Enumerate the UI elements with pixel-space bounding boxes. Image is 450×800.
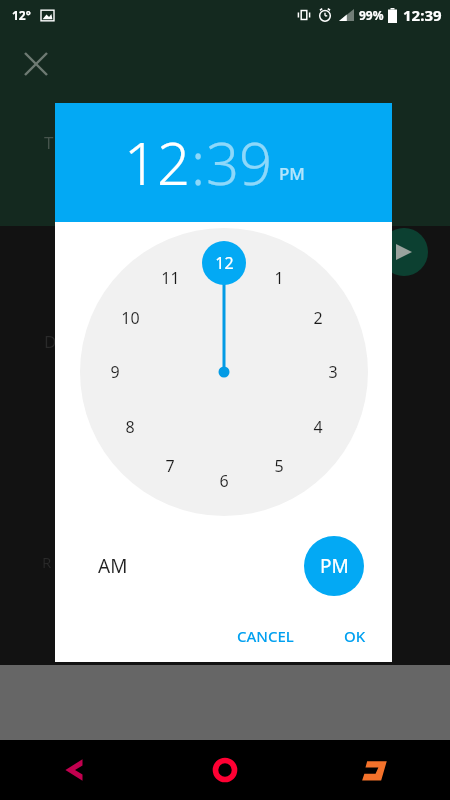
staticText: 9 xyxy=(110,361,120,383)
staticText: : xyxy=(191,123,206,202)
staticText: D xyxy=(44,330,57,353)
button[interactable]: 9 xyxy=(98,355,132,389)
staticText: 1 xyxy=(274,267,284,289)
staticText: CANCEL xyxy=(237,626,294,646)
button[interactable]: 12 xyxy=(207,246,241,280)
button[interactable]: 4 xyxy=(301,410,335,444)
button[interactable]: Recents xyxy=(300,740,450,800)
staticText: R xyxy=(42,552,52,572)
staticText: OK xyxy=(344,626,366,646)
button[interactable]: 39 xyxy=(206,123,273,202)
staticText: 6 xyxy=(219,470,229,492)
button[interactable]: 3 xyxy=(316,355,350,389)
button[interactable]: 6 xyxy=(207,464,241,498)
staticText: 10 xyxy=(121,307,140,329)
staticText: 4 xyxy=(313,416,323,438)
staticText: 8 xyxy=(125,416,135,438)
button[interactable]: Close xyxy=(16,44,56,84)
button[interactable]: OK xyxy=(330,616,380,656)
button[interactable]: Home xyxy=(150,740,300,800)
button[interactable]: 7 xyxy=(153,449,187,483)
button[interactable]: 2 xyxy=(301,301,335,335)
staticText: 12:39 xyxy=(403,5,442,25)
button[interactable]: Back xyxy=(0,740,150,800)
button[interactable]: 10 xyxy=(113,301,147,335)
staticText: 12° xyxy=(12,7,31,23)
staticText: PM xyxy=(320,553,349,579)
button[interactable]: Play xyxy=(380,228,428,276)
staticText: 99% xyxy=(359,7,384,23)
button[interactable]: PM xyxy=(304,536,364,596)
staticText: 2 xyxy=(313,307,323,329)
staticText: 5 xyxy=(274,455,284,477)
button[interactable]: 1 xyxy=(262,261,296,295)
staticText: 7 xyxy=(165,455,175,477)
staticText: AM xyxy=(98,553,128,579)
staticText: 12 xyxy=(215,252,234,274)
staticText: PM xyxy=(279,162,305,185)
button[interactable]: 8 xyxy=(113,410,147,444)
staticText: 11 xyxy=(161,267,180,289)
button[interactable]: CANCEL xyxy=(223,616,308,656)
staticText: T xyxy=(44,131,54,154)
button[interactable]: AM xyxy=(83,536,143,596)
staticText: 3 xyxy=(328,361,338,383)
button[interactable]: 12 xyxy=(124,123,191,202)
button[interactable]: 11 xyxy=(153,261,187,295)
button[interactable]: 5 xyxy=(262,449,296,483)
